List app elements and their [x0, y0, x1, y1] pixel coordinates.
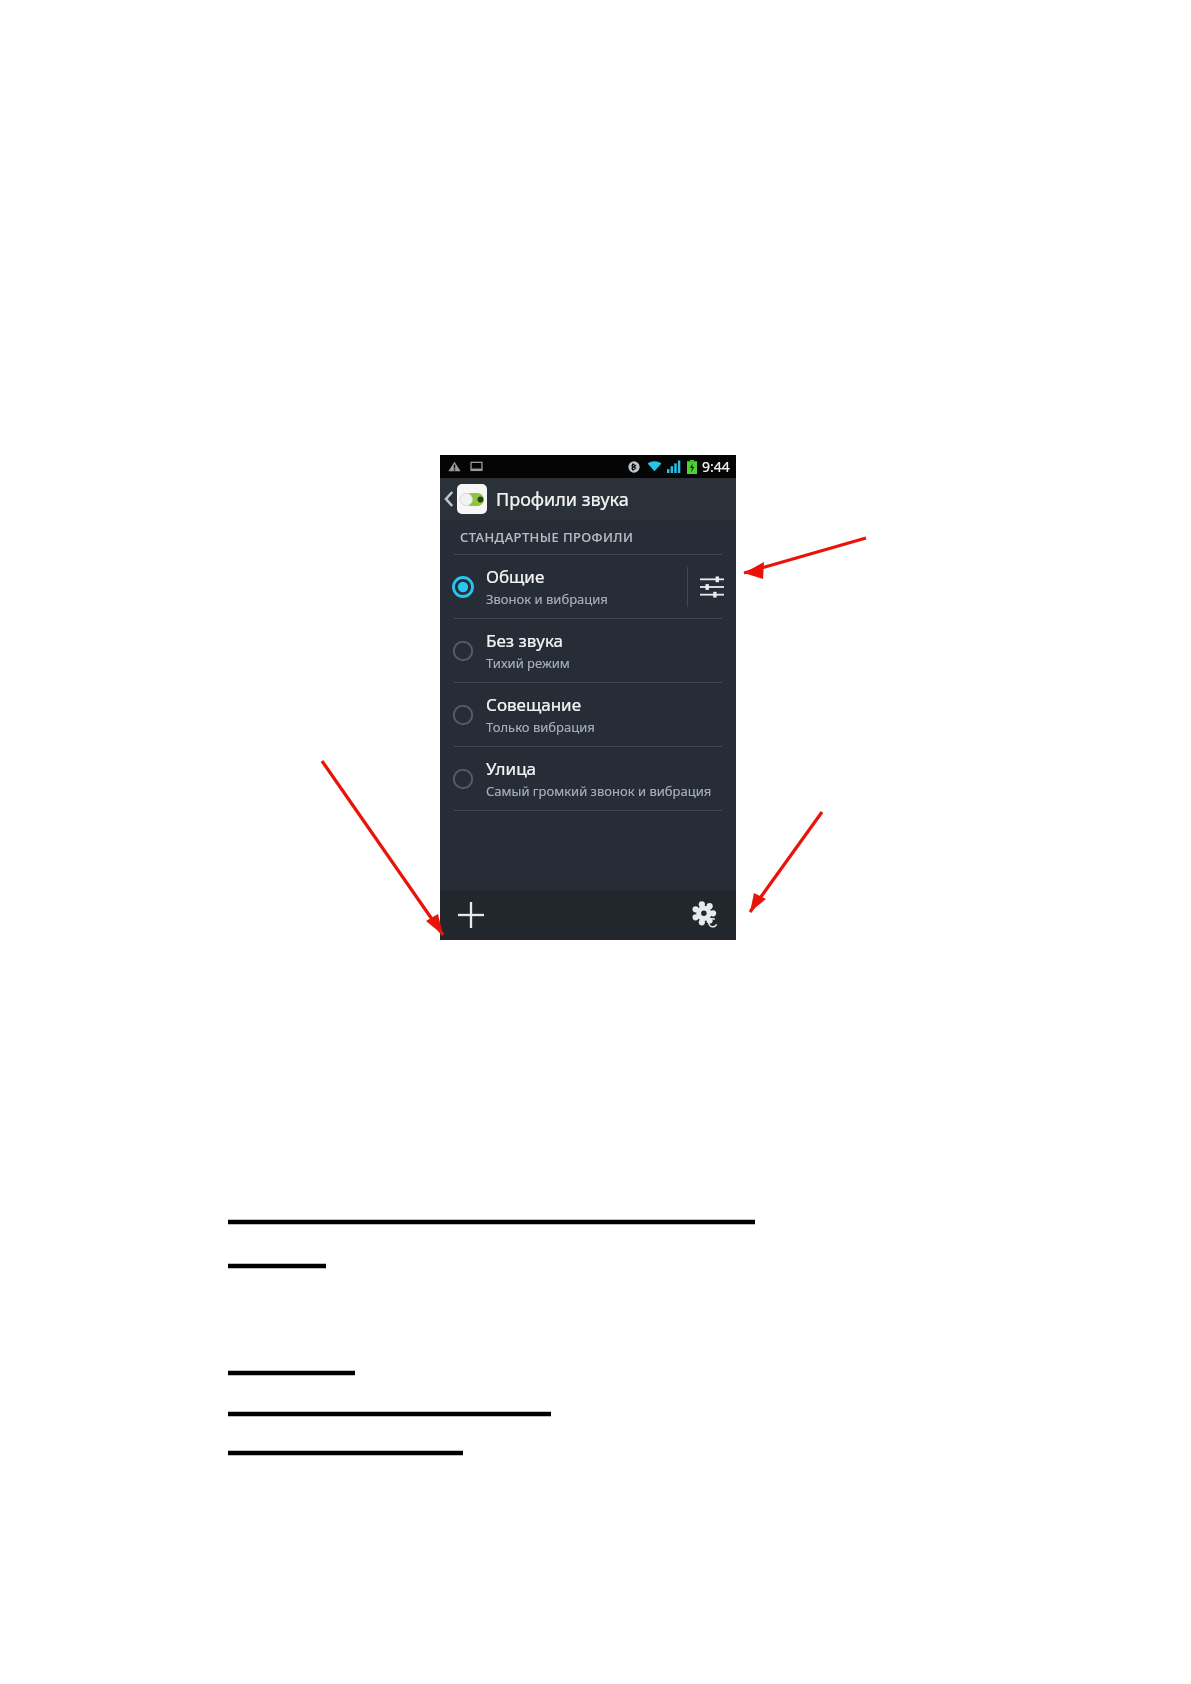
- staticText: Только вибрация: [486, 718, 595, 736]
- staticText: Совещание: [486, 693, 581, 716]
- button[interactable]: Без звука: [440, 619, 736, 682]
- button[interactable]: Без звука: [440, 619, 486, 682]
- staticText: Звонок и вибрация: [486, 590, 608, 608]
- button[interactable]: Общие: [440, 555, 736, 618]
- button[interactable]: Назад: [440, 478, 736, 520]
- other: Назад: [444, 489, 455, 509]
- staticText: СТАНДАРТНЫЕ ПРОФИЛИ: [460, 528, 634, 546]
- staticText: Улица: [486, 757, 537, 780]
- staticText: Общие: [486, 565, 545, 588]
- button[interactable]: Улица: [440, 747, 736, 810]
- button[interactable]: Совещание: [440, 683, 736, 746]
- button[interactable]: Настройки: [674, 890, 736, 940]
- staticText: Самый громкий звонок и вибрация: [486, 782, 712, 800]
- staticText: Тихий режим: [486, 654, 570, 672]
- button[interactable]: Общие: [440, 555, 486, 618]
- button[interactable]: Добавить профиль: [440, 890, 502, 940]
- staticText: 9:44: [702, 457, 730, 476]
- staticText: Без звука: [486, 629, 564, 652]
- button[interactable]: Улица: [440, 747, 486, 810]
- button[interactable]: Совещание: [440, 683, 486, 746]
- button[interactable]: Настройки профиля: [688, 555, 736, 618]
- staticText: Профили звука: [496, 487, 629, 512]
